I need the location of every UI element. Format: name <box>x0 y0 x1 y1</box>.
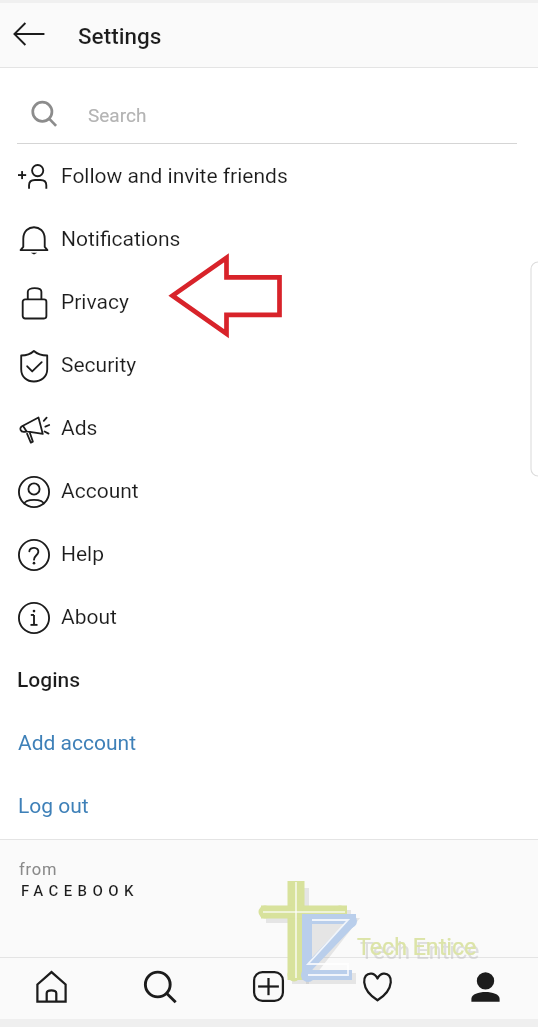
staticText: Follow and invite friends <box>61 164 288 189</box>
button[interactable]: Security <box>0 334 538 397</box>
button[interactable]: Privacy <box>0 271 538 334</box>
button[interactable]: Notifications <box>0 208 538 271</box>
staticText: Tech Entice <box>360 937 480 964</box>
button[interactable]: Profile <box>447 957 523 1019</box>
button[interactable]: Search <box>0 68 538 144</box>
staticText: Search <box>88 104 147 126</box>
button[interactable]: Follow and invite friends <box>0 145 538 208</box>
staticText: Tech Entice <box>357 933 477 960</box>
staticText: Log out <box>18 794 89 819</box>
button[interactable]: Log out <box>0 775 538 838</box>
staticText: Logins <box>17 668 81 693</box>
staticText: Settings <box>78 23 162 49</box>
button[interactable]: Activity <box>339 957 415 1019</box>
staticText: Notifications <box>61 227 181 252</box>
button[interactable]: New post <box>230 957 306 1019</box>
button[interactable]: Account <box>0 460 538 523</box>
button[interactable]: About <box>0 586 538 649</box>
button[interactable]: Help <box>0 523 538 586</box>
staticText: Account <box>61 479 139 504</box>
button[interactable]: Search <box>122 957 198 1019</box>
button[interactable]: Ads <box>0 397 538 460</box>
staticText: from <box>19 860 58 879</box>
staticText: Security <box>61 353 137 378</box>
button[interactable]: Add account <box>0 712 538 775</box>
staticText: FACEBOOK <box>21 882 139 900</box>
staticText: Privacy <box>61 290 129 315</box>
staticText: Ads <box>61 416 98 441</box>
button[interactable]: Home <box>13 957 89 1019</box>
staticText: About <box>61 605 117 630</box>
button[interactable]: Back <box>0 3 62 65</box>
staticText: Help <box>61 542 105 567</box>
staticText: Add account <box>18 731 137 756</box>
